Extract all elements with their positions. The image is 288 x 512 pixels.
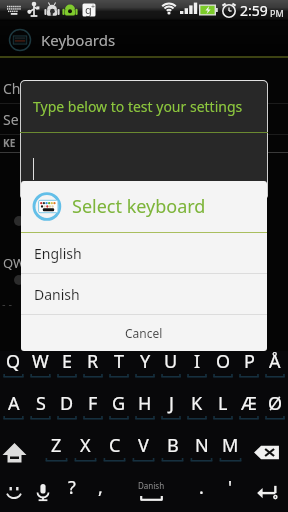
staticText: P	[244, 349, 255, 374]
staticText: X	[80, 433, 91, 458]
button[interactable]: D	[54, 393, 80, 435]
button[interactable]: Å	[262, 351, 288, 393]
button[interactable]: ?	[57, 477, 86, 512]
staticText: Danish	[34, 285, 80, 304]
staticText: H	[138, 391, 152, 416]
staticText: U	[164, 349, 178, 374]
button[interactable]: ,	[86, 477, 115, 512]
staticText: W	[32, 349, 49, 374]
staticText: .	[199, 475, 204, 500]
button[interactable]: S	[27, 393, 54, 435]
staticText: - -	[2, 296, 12, 311]
staticText: Danish	[138, 480, 165, 491]
button[interactable]: '	[216, 477, 245, 512]
staticText: Select keyboard	[72, 194, 206, 219]
button[interactable]: Space	[115, 477, 187, 512]
staticText: +	[91, 2, 96, 12]
button[interactable]: K	[184, 393, 210, 435]
button[interactable]: T	[106, 351, 132, 393]
staticText: Ø	[268, 391, 283, 416]
button[interactable]: Delete	[245, 435, 288, 477]
button[interactable]: U	[158, 351, 184, 393]
staticText: PM	[270, 7, 284, 19]
staticText: Se	[3, 110, 19, 129]
button[interactable]: R	[80, 351, 106, 393]
button[interactable]: M	[216, 435, 245, 477]
staticText: L	[218, 391, 228, 416]
staticText: S	[36, 391, 46, 416]
staticText: 2:59	[240, 1, 268, 20]
button[interactable]: J	[158, 393, 184, 435]
button[interactable]: L	[210, 393, 236, 435]
staticText: V	[138, 433, 149, 458]
staticText: R	[87, 349, 99, 374]
staticText: QW	[3, 254, 26, 272]
button[interactable]: X	[71, 435, 100, 477]
button[interactable]: H	[132, 393, 158, 435]
staticText: Æ	[241, 391, 257, 416]
button[interactable]: Æ	[236, 393, 262, 435]
button[interactable]: Shift	[0, 435, 42, 477]
button[interactable]: W	[27, 351, 54, 393]
button[interactable]: Z	[42, 435, 71, 477]
staticText: KE	[3, 136, 16, 150]
staticText: G	[112, 391, 126, 416]
button[interactable]: E	[54, 351, 80, 393]
staticText: F	[88, 391, 98, 416]
button[interactable]: P	[236, 351, 262, 393]
staticText: I	[194, 349, 201, 374]
staticText: Cancel	[125, 325, 163, 341]
button[interactable]: Cancel	[21, 315, 267, 351]
staticText: M	[222, 433, 239, 458]
button[interactable]: Enter	[245, 477, 288, 512]
staticText: T	[114, 349, 125, 374]
staticText: '	[228, 475, 233, 500]
staticText: E	[62, 349, 73, 374]
staticText: Z	[51, 433, 62, 458]
button[interactable]: Ø	[262, 393, 288, 435]
staticText: A	[8, 391, 20, 416]
staticText: O	[216, 349, 231, 374]
button[interactable]: V	[129, 435, 158, 477]
button[interactable]: Emoji	[0, 477, 28, 512]
staticText: Y	[140, 349, 151, 374]
staticText: B	[167, 433, 179, 458]
button[interactable]: Y	[132, 351, 158, 393]
button[interactable]: G	[106, 393, 132, 435]
button[interactable]: English	[21, 233, 267, 273]
button[interactable]: .	[187, 477, 216, 512]
staticText: C	[109, 433, 121, 458]
staticText: D	[60, 391, 74, 416]
staticText: Ch	[3, 79, 21, 98]
staticText: Type below to test your settings	[33, 97, 243, 116]
staticText: Q	[6, 349, 21, 374]
staticText: ?	[68, 475, 76, 500]
staticText: Å	[269, 349, 281, 374]
button[interactable]: A	[0, 393, 27, 435]
staticText: English	[34, 244, 82, 263]
staticText: K	[191, 391, 203, 416]
staticText: ,	[98, 475, 103, 500]
button[interactable]: O	[210, 351, 236, 393]
button[interactable]: C	[100, 435, 129, 477]
staticText: J	[169, 391, 174, 416]
staticText: N	[195, 433, 209, 458]
staticText: Keyboards	[41, 30, 116, 50]
button[interactable]: Keyboards	[0, 21, 288, 58]
button[interactable]: F	[80, 393, 106, 435]
button[interactable]: Q	[0, 351, 27, 393]
button[interactable]: I	[184, 351, 210, 393]
button[interactable]: N	[187, 435, 216, 477]
button[interactable]: Voice input	[28, 477, 57, 512]
button[interactable]: Danish	[21, 274, 267, 314]
staticText: g	[85, 2, 92, 17]
button[interactable]: B	[158, 435, 187, 477]
